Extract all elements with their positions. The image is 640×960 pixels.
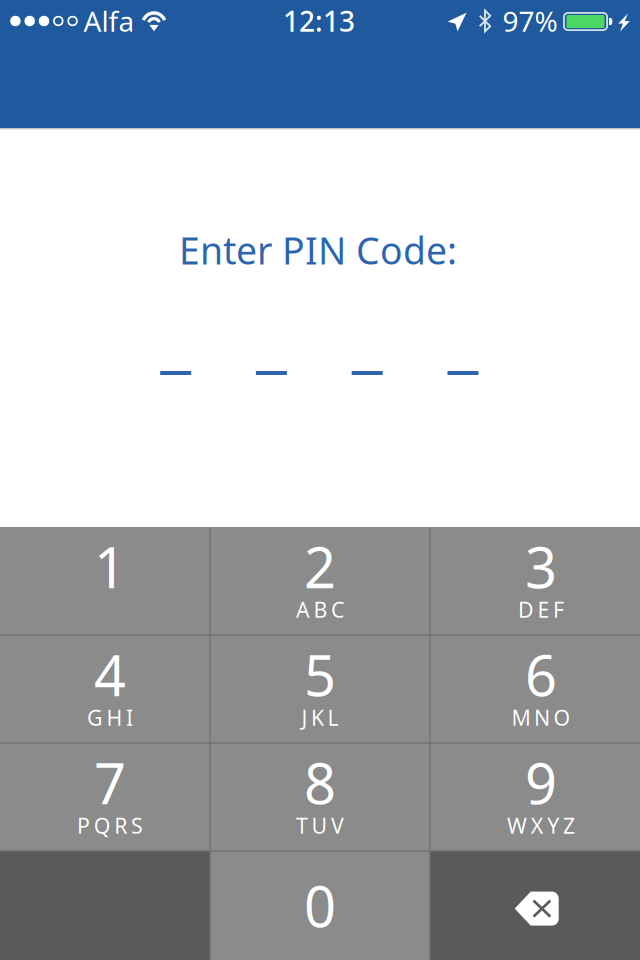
button[interactable]: 2 xyxy=(210,527,430,635)
button[interactable]: 0 xyxy=(210,851,430,960)
staticText: 5 xyxy=(304,637,336,712)
staticText: L xyxy=(328,703,339,732)
staticText: R xyxy=(114,811,127,840)
button[interactable]: 7 xyxy=(0,743,210,851)
staticText: K xyxy=(311,703,324,732)
staticText: X xyxy=(531,811,544,840)
button[interactable]: 9 xyxy=(430,743,640,851)
staticText: D xyxy=(518,595,534,624)
button[interactable]: 1 xyxy=(0,527,210,635)
staticText: I xyxy=(126,703,133,732)
staticText: Y xyxy=(547,811,559,840)
staticText: O xyxy=(554,703,571,732)
staticText: Z xyxy=(563,811,575,840)
staticText: 4 xyxy=(94,637,126,712)
button[interactable]: 5 xyxy=(210,635,430,743)
staticText: B xyxy=(313,595,327,624)
staticText: H xyxy=(106,703,122,732)
button[interactable]: 4 xyxy=(0,635,210,743)
staticText: G xyxy=(87,703,103,732)
staticText: 7 xyxy=(94,745,126,820)
staticText: Alfa xyxy=(83,2,134,40)
button[interactable]: 8 xyxy=(210,743,430,851)
staticText: 6 xyxy=(525,637,557,712)
staticText: T xyxy=(296,811,308,840)
staticText: Q xyxy=(94,811,111,840)
staticText: J xyxy=(301,703,307,732)
staticText: N xyxy=(534,703,550,732)
staticText: V xyxy=(331,811,344,840)
staticText: W xyxy=(507,811,527,840)
staticText: P xyxy=(77,811,90,840)
button[interactable]: 6 xyxy=(430,635,640,743)
staticText: 12:13 xyxy=(283,2,355,40)
staticText: 2 xyxy=(304,529,336,604)
staticText: 3 xyxy=(525,529,557,604)
staticText: 97% xyxy=(502,2,557,40)
button[interactable]: 3 xyxy=(430,527,640,635)
staticText: Enter PIN Code: xyxy=(179,225,457,275)
staticText: E xyxy=(537,595,549,624)
staticText: C xyxy=(331,595,344,624)
button[interactable]: Delete xyxy=(430,851,640,960)
staticText: A xyxy=(296,595,310,624)
staticText: F xyxy=(553,595,564,624)
staticText: M xyxy=(511,703,530,732)
staticText: 0 xyxy=(304,868,336,943)
staticText: S xyxy=(131,811,143,840)
staticText: U xyxy=(311,811,327,840)
staticText: 8 xyxy=(304,745,336,820)
staticText: 9 xyxy=(525,745,557,820)
staticText: 1 xyxy=(94,529,126,604)
